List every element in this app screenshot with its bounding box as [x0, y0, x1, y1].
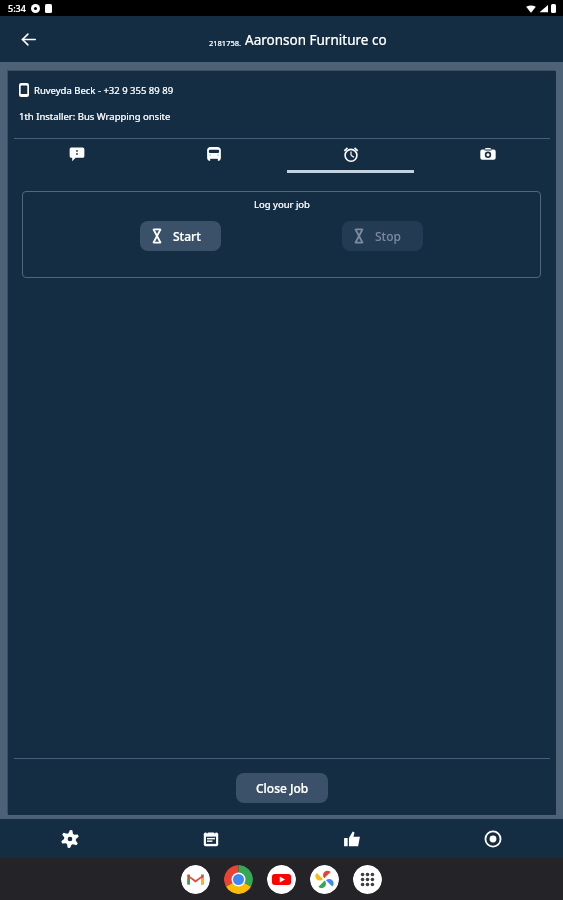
- button[interactable]: Close Job: [236, 773, 328, 803]
- button[interactable]: Settings: [0, 819, 140, 858]
- button[interactable]: Travel: [145, 139, 282, 173]
- staticText: Close Job: [256, 780, 309, 796]
- button[interactable]: Photo: [419, 139, 556, 173]
- staticText: 1th Installer: Bus Wrapping onsite: [19, 110, 171, 123]
- button[interactable]: Schedule: [140, 819, 281, 858]
- staticText: Ruveyda Beck - +32 9 355 89 89: [34, 84, 174, 97]
- button[interactable]: Notes: [8, 139, 145, 173]
- staticText: Stop: [375, 228, 401, 244]
- staticText: 5:34: [8, 2, 26, 14]
- button[interactable]: Stop: [342, 221, 423, 251]
- staticText: 2181758.: [209, 38, 242, 48]
- button[interactable]: YouTube: [267, 865, 296, 894]
- button[interactable]: Status: [422, 819, 563, 858]
- staticText: Log your job: [254, 198, 310, 211]
- staticText: Aaronson Furniture co: [245, 31, 387, 49]
- button[interactable]: Time: [282, 139, 419, 173]
- button[interactable]: Gmail: [181, 865, 210, 894]
- button[interactable]: Approve: [281, 819, 422, 858]
- button[interactable]: Chrome: [224, 865, 253, 894]
- staticText: Start: [173, 228, 201, 244]
- button[interactable]: Back: [14, 25, 42, 53]
- button[interactable]: Start: [140, 221, 221, 251]
- button[interactable]: Photos: [310, 865, 339, 894]
- button[interactable]: All apps: [353, 865, 382, 894]
